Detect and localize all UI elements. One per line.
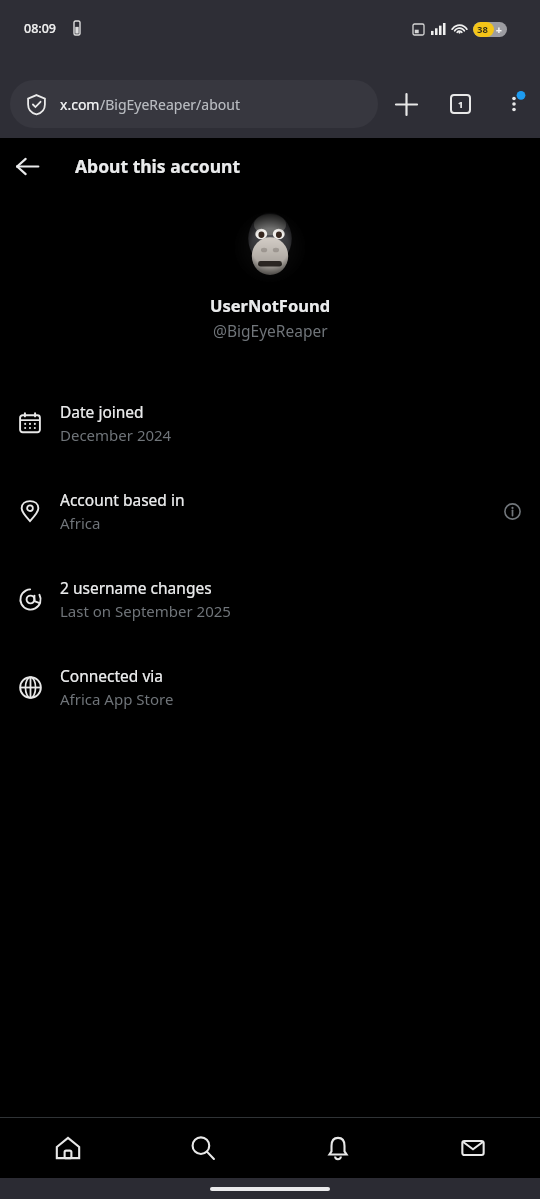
button[interactable]: Messages xyxy=(405,1118,540,1178)
staticText: + xyxy=(496,23,502,37)
staticText: UserNotFound xyxy=(210,294,331,316)
staticText: @BigEyeReaper xyxy=(213,320,328,341)
staticText: 08:09 xyxy=(24,20,57,37)
button[interactable]: Profile photo xyxy=(235,212,305,282)
button[interactable]: More info xyxy=(490,489,534,533)
button[interactable]: Search xyxy=(135,1118,270,1178)
staticText: x.com xyxy=(60,95,100,114)
button[interactable]: Date joined xyxy=(0,379,540,467)
staticText: 38 xyxy=(477,23,488,36)
staticText: 1 xyxy=(458,98,464,111)
button[interactable]: Account based in xyxy=(0,467,540,555)
staticText: Connected via xyxy=(60,665,163,686)
staticText: About this account xyxy=(75,154,240,178)
button[interactable]: Back xyxy=(5,144,49,188)
staticText: /BigEyeReaper/about xyxy=(100,95,240,114)
staticText: December 2024 xyxy=(60,425,172,445)
staticText: Date joined xyxy=(60,401,144,422)
button[interactable]: Home xyxy=(0,1118,135,1178)
button[interactable]: Connected via xyxy=(0,643,540,731)
button[interactable]: 2 username changes xyxy=(0,555,540,643)
button[interactable]: Notifications xyxy=(270,1118,405,1178)
staticText: Last on September 2025 xyxy=(60,601,231,621)
staticText: Africa xyxy=(60,513,101,533)
staticText: Account based in xyxy=(60,489,185,510)
button[interactable]: Tabs xyxy=(438,82,482,126)
staticText: Africa App Store xyxy=(60,689,174,709)
button[interactable]: More options xyxy=(492,82,536,126)
button[interactable]: x.com xyxy=(10,80,378,128)
button[interactable]: New tab xyxy=(384,82,428,126)
staticText: 2 username changes xyxy=(60,577,212,598)
